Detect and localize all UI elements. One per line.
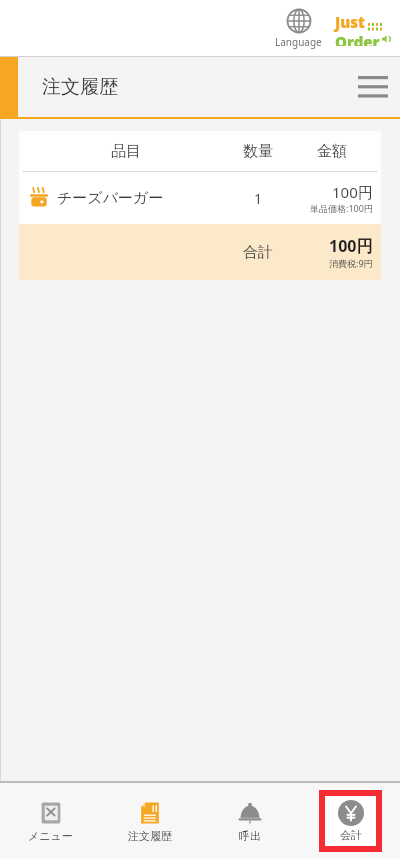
staticText: 数量 [243,142,273,161]
staticText: 単品価格:100円 [310,202,373,214]
staticText: 会計 [340,828,362,842]
staticText: 合計 [243,243,273,262]
button[interactable]: Menu [346,60,400,114]
staticText: 100円 [329,235,373,257]
staticText: 消費税:9円 [329,257,373,269]
staticText: 注文履歴 [42,75,118,99]
staticText: 金額 [317,142,347,161]
button[interactable]: 会計 [325,796,376,846]
button[interactable]: メニュー [18,794,83,849]
staticText: 注文履歴 [128,829,172,843]
staticText: 1 [254,189,263,208]
staticText: 呼出 [239,829,261,843]
button[interactable]: Language [271,6,326,51]
staticText: Just [335,12,365,32]
staticText: Language [275,35,322,49]
staticText: 100円 [332,182,373,202]
staticText: Order [335,32,380,46]
button[interactable]: 呼出 [227,794,273,849]
staticText: 品目 [111,142,141,161]
button[interactable]: Just Order [332,12,394,46]
button[interactable]: チーズバーガー [19,172,381,224]
staticText: チーズバーガー [57,189,164,208]
button[interactable]: 注文履歴 [118,794,182,849]
staticText: メニュー [28,829,73,843]
